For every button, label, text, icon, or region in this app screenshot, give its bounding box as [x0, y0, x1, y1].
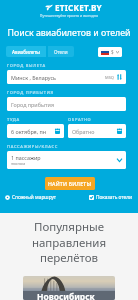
staticText: Поиск авиабилетов и отелей [0, 27, 138, 39]
staticText: Минск , Беларусь [11, 74, 105, 81]
staticText: ГОРОД ПРИБЫТИЯ [7, 90, 54, 95]
staticText: ГОРОД ВЫЛЕТА [7, 63, 46, 68]
button[interactable]: Показать отели [89, 194, 132, 201]
staticText: 6 октября, пн [11, 128, 55, 135]
staticText: Авиабилеты [12, 49, 40, 54]
staticText: НАЙТИ БИЛЕТЫ [48, 180, 92, 187]
button[interactable]: Обратно [68, 124, 126, 138]
staticText: Отели [54, 49, 68, 54]
staticText: Обратно [72, 128, 117, 135]
staticText: Популярные направления перелётов [0, 219, 138, 265]
staticText: 1 пассажир [11, 154, 41, 161]
button[interactable]: Авиабилеты [6, 46, 46, 57]
button[interactable]: Язык и валюта [98, 47, 122, 57]
staticText: Город прибытия [11, 101, 122, 108]
button[interactable]: Город прибытия [7, 97, 126, 111]
staticText: ETICKET.BY [55, 2, 102, 12]
button[interactable]: Отели [48, 46, 74, 57]
button[interactable]: Новосибирск [23, 276, 115, 300]
button[interactable]: НАЙТИ БИЛЕТЫ [45, 177, 95, 190]
staticText: ПАССАЖИРЫ/КЛАСС [7, 144, 58, 149]
staticText: ТУДА [7, 117, 20, 122]
staticText: Показать отели [96, 194, 132, 201]
staticText: ОБРАТНО [68, 117, 92, 122]
button[interactable]: 1 пассажир [7, 151, 126, 169]
staticText: Сложный маршрут [12, 194, 57, 201]
staticText: Путешествуйте просто и выгодно [0, 13, 138, 18]
button[interactable]: 6 октября, пн [7, 124, 64, 138]
staticText: Новосибирск [37, 291, 95, 300]
staticText: MSQ [105, 75, 114, 80]
button[interactable]: ETICKET.BY [45, 2, 102, 12]
button[interactable]: Сложный маршрут [5, 194, 57, 201]
staticText: $ [111, 49, 114, 55]
staticText: эконом [11, 161, 26, 166]
button[interactable]: Минск , Беларусь [7, 70, 126, 84]
